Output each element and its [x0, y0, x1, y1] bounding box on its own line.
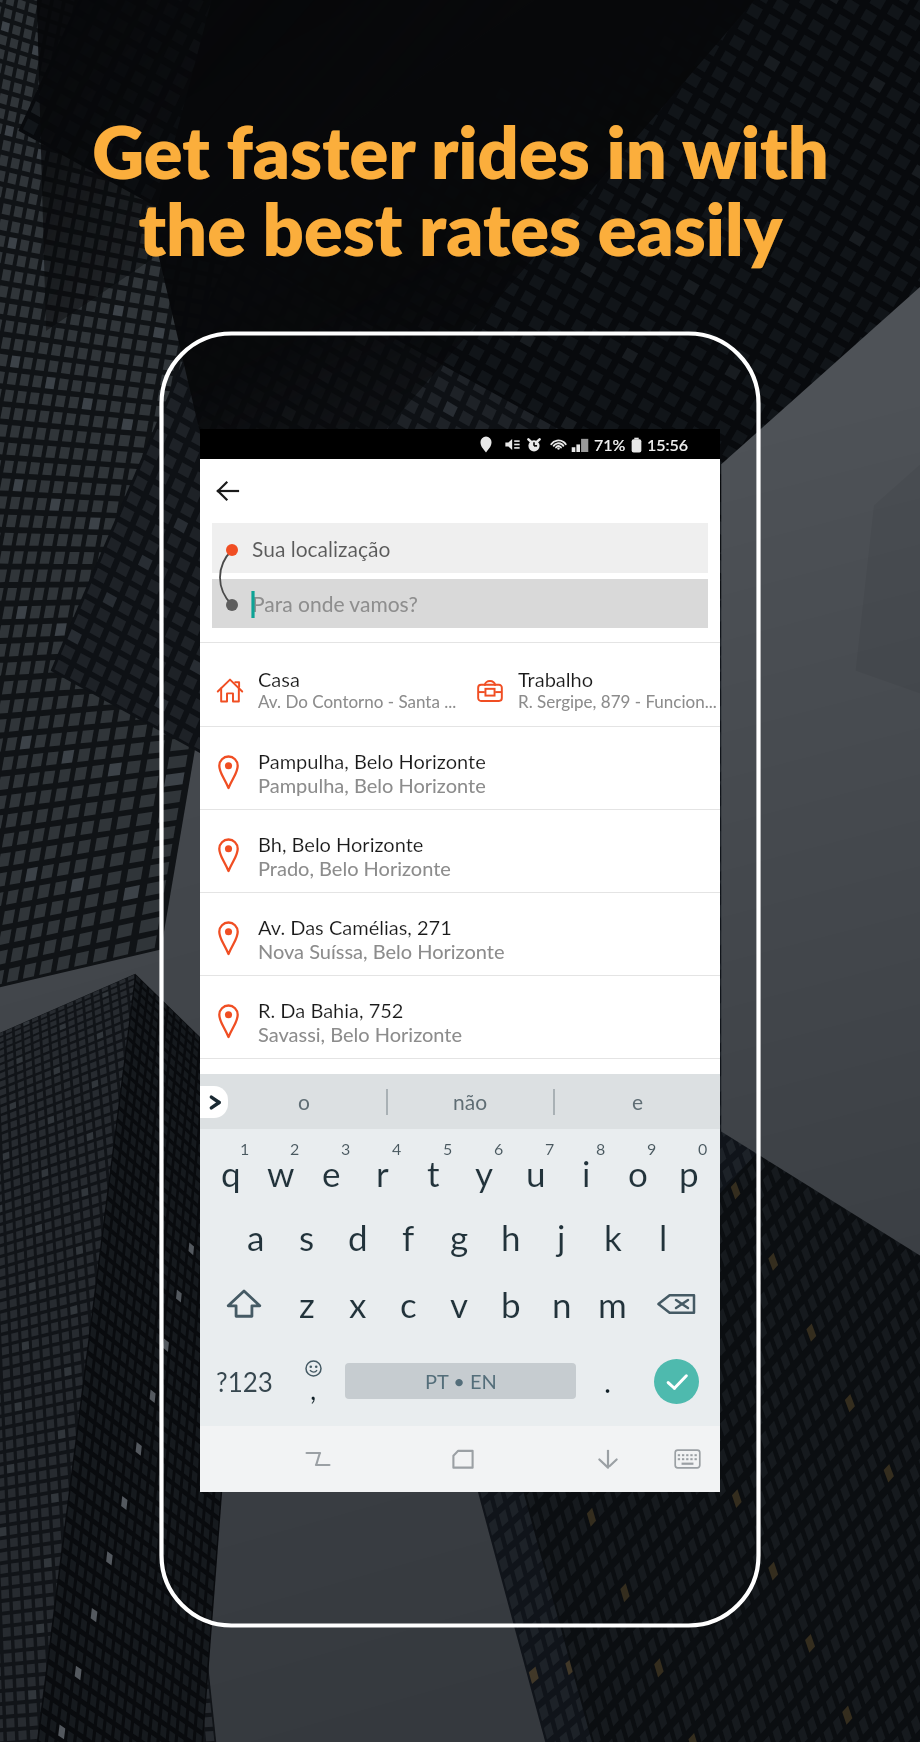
staticText: 2	[290, 1139, 300, 1158]
button[interactable]: não	[388, 1074, 553, 1129]
button[interactable]: Av. Das Camélias, 271	[200, 893, 720, 975]
staticText: b	[501, 1283, 521, 1325]
staticText: c	[400, 1283, 417, 1325]
button[interactable]: h	[485, 1203, 536, 1270]
staticText: t	[427, 1152, 440, 1194]
button[interactable]: 9	[612, 1129, 663, 1203]
button[interactable]: d	[332, 1203, 383, 1270]
staticText: ,	[310, 1372, 317, 1406]
button[interactable]: x	[332, 1270, 383, 1338]
button[interactable]: Recents	[441, 1426, 485, 1492]
staticText: z	[299, 1283, 315, 1325]
staticText: 7	[545, 1139, 555, 1158]
button[interactable]: Hide keyboard	[586, 1426, 630, 1492]
staticText: i	[582, 1152, 591, 1194]
staticText: f	[402, 1216, 415, 1258]
button[interactable]: Emoji	[282, 1338, 345, 1424]
button[interactable]: Bh, Belo Horizonte	[200, 810, 720, 892]
button[interactable]: 4	[357, 1129, 408, 1203]
button[interactable]: Casa	[200, 643, 460, 726]
staticText: 3	[341, 1139, 351, 1158]
button[interactable]: Sua localização	[212, 523, 708, 573]
button[interactable]: 3	[306, 1129, 357, 1203]
staticText: Pampulha, Belo Horizonte	[258, 773, 486, 797]
staticText: 0	[698, 1139, 708, 1158]
button[interactable]: f	[383, 1203, 434, 1270]
button[interactable]: More suggestions	[200, 1086, 228, 1118]
staticText: e	[632, 1089, 644, 1114]
staticText: R. Sergipe, 879 - Funcion...	[518, 691, 717, 711]
button[interactable]: Pampulha, Belo Horizonte	[200, 727, 720, 809]
staticText: 1	[240, 1139, 250, 1158]
button[interactable]: 8	[561, 1129, 612, 1203]
button[interactable]: j	[536, 1203, 587, 1270]
staticText: n	[552, 1283, 572, 1325]
staticText: k	[604, 1216, 622, 1258]
staticText: Nova Suíssa, Belo Horizonte	[258, 939, 505, 963]
button[interactable]: Switch input method	[296, 1426, 340, 1492]
staticText: 4	[392, 1139, 402, 1158]
button[interactable]: e	[555, 1074, 720, 1129]
staticText: v	[450, 1283, 469, 1325]
staticText: Casa	[258, 667, 300, 691]
staticText: y	[475, 1152, 494, 1194]
staticText: w	[267, 1152, 295, 1194]
staticText: o	[628, 1152, 648, 1194]
button[interactable]: Backspace	[638, 1270, 714, 1338]
staticText: Bh, Belo Horizonte	[258, 832, 424, 856]
staticText: o	[298, 1089, 310, 1114]
button[interactable]: b	[485, 1270, 536, 1338]
button[interactable]: 6	[459, 1129, 510, 1203]
button[interactable]: 7	[510, 1129, 561, 1203]
staticText: Av. Das Camélias, 271	[258, 915, 452, 939]
button[interactable]: 5	[408, 1129, 459, 1203]
button[interactable]: l	[638, 1203, 689, 1270]
staticText: g	[450, 1216, 469, 1258]
button[interactable]: g	[434, 1203, 485, 1270]
button[interactable]: z	[281, 1270, 332, 1338]
staticText: Prado, Belo Horizonte	[258, 856, 451, 880]
button[interactable]: Back	[200, 459, 720, 523]
staticText: q	[221, 1152, 241, 1194]
staticText: m	[598, 1283, 627, 1325]
staticText: 8	[596, 1139, 606, 1158]
button[interactable]: k	[587, 1203, 638, 1270]
staticText: 5	[443, 1139, 453, 1158]
button[interactable]: ?123	[206, 1338, 282, 1424]
staticText: j	[557, 1216, 566, 1258]
staticText: .	[604, 1363, 612, 1399]
staticText: Get faster rides in with the best rates …	[92, 108, 829, 271]
staticText: 9	[647, 1139, 657, 1158]
button[interactable]: PT • EN	[345, 1363, 576, 1399]
button[interactable]: m	[587, 1270, 638, 1338]
button[interactable]: v	[434, 1270, 485, 1338]
button[interactable]: s	[281, 1203, 332, 1270]
staticText: x	[349, 1283, 367, 1325]
button[interactable]: 2	[256, 1129, 306, 1203]
button[interactable]: Para onde vamos?	[212, 579, 708, 628]
button[interactable]: 1	[206, 1129, 256, 1203]
staticText: u	[526, 1152, 546, 1194]
button[interactable]: n	[536, 1270, 587, 1338]
button[interactable]: Shift	[206, 1270, 281, 1338]
button[interactable]: R. Da Bahia, 752	[200, 976, 720, 1058]
staticText: PT • EN	[425, 1369, 497, 1393]
button[interactable]: a	[231, 1203, 281, 1270]
staticText: Savassi, Belo Horizonte	[258, 1022, 463, 1046]
staticText: Av. Do Contorno - Santa ...	[258, 691, 457, 711]
button[interactable]: .	[576, 1338, 639, 1424]
staticText: p	[679, 1152, 699, 1194]
staticText: ?123	[216, 1366, 273, 1397]
button[interactable]: 0	[663, 1129, 714, 1203]
staticText: não	[453, 1089, 488, 1114]
staticText: r	[376, 1152, 389, 1194]
staticText: 6	[494, 1139, 504, 1158]
button[interactable]: Trabalho	[460, 643, 720, 726]
button[interactable]: o	[222, 1074, 386, 1129]
staticText: 15:56	[647, 435, 689, 454]
staticText: h	[501, 1216, 521, 1258]
button[interactable]: Keyboard settings	[665, 1426, 709, 1492]
staticText: s	[299, 1216, 315, 1258]
button[interactable]: Enter	[639, 1338, 714, 1424]
button[interactable]: c	[383, 1270, 434, 1338]
